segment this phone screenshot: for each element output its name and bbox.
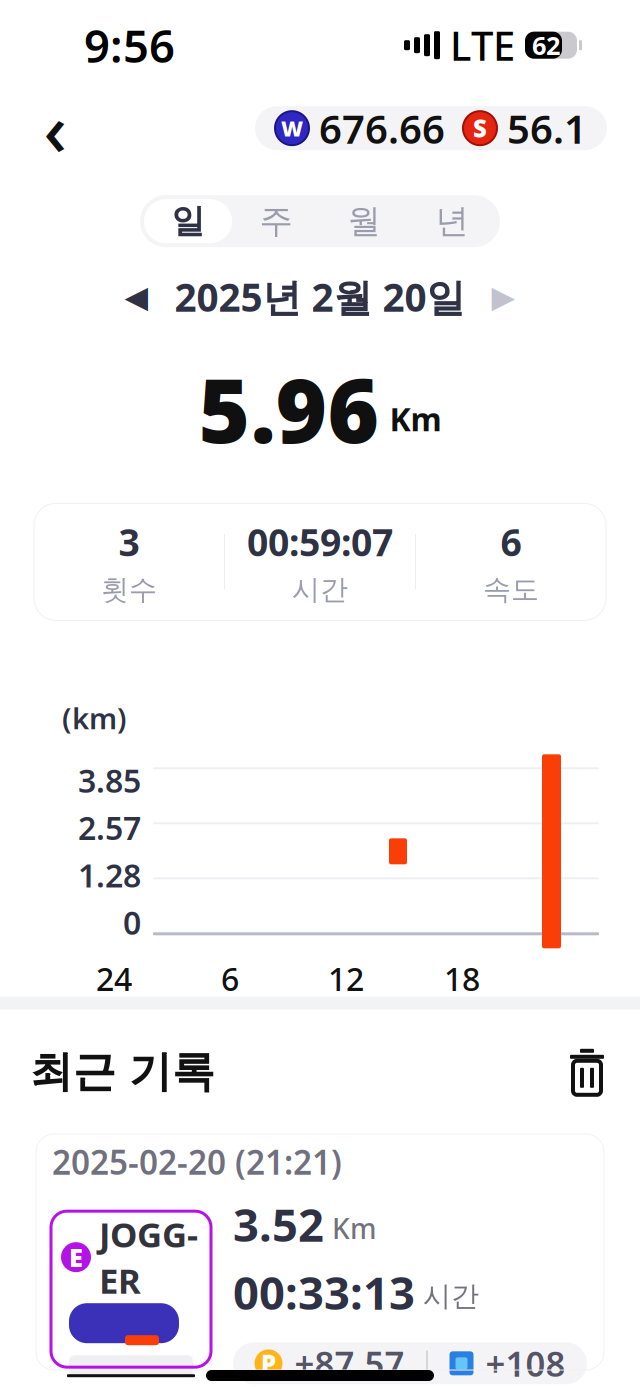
staticText: +108 [485,1340,565,1386]
staticText: 00:59:07 [247,517,393,566]
staticText: 3.52 [233,1194,324,1254]
staticText: 9:56 [84,15,175,75]
staticText: 시간 [423,1279,479,1313]
staticText: 2025-02-20 (21:21) [52,1140,342,1184]
staticText: ▶ [491,279,515,314]
staticText: 월 [347,201,380,242]
staticText: ◀ [124,279,148,314]
staticText: P [261,1347,276,1379]
staticText: 시간 [292,572,348,607]
staticText: 주 [259,201,292,242]
button[interactable]: 일 [144,199,232,243]
staticText: 1.28 [78,854,141,896]
button[interactable]: 2025-02-20 (21:21) [36,1134,604,1370]
staticText: JOGGER [99,1211,198,1303]
button[interactable]: Previous day [114,275,158,319]
staticText: W [281,114,303,142]
button[interactable]: 주 [232,199,320,243]
button[interactable]: W [255,106,607,150]
staticText: 년 [435,201,468,242]
staticText: 속도 [483,572,539,607]
staticText: LTE [450,19,515,72]
staticText: 56.1 [507,102,587,155]
staticText: 2.57 [78,806,141,849]
staticText: 6 [500,517,521,566]
button[interactable]: Back [24,97,86,159]
staticText: E [69,1240,83,1274]
button[interactable]: 월 [320,199,408,243]
staticText: 일 [171,201,204,242]
staticText: 3 [118,517,139,566]
staticText: 18 [444,957,480,1000]
staticText: S [473,112,487,144]
staticText: 24 [96,957,132,1000]
staticText: Km [389,398,441,440]
staticText: +87.57 [294,1340,404,1386]
staticText: 0 [123,901,141,944]
staticText: 2025년 2월 20일 [174,271,465,322]
staticText: 676.66 [319,102,445,155]
staticText: 6 [221,957,239,1000]
staticText: 62 [532,28,560,62]
staticText: Km [332,1209,377,1247]
staticText: 5.96 [198,350,379,467]
button[interactable]: Next day [481,275,525,319]
staticText: ‹ [43,80,66,176]
staticText: 최근 기록 [30,1046,215,1098]
button[interactable]: 년 [408,199,496,243]
staticText: 3.85 [78,759,141,802]
staticText: 횟수 [101,572,157,607]
staticText: 00:33:13 [233,1262,415,1322]
staticText: 12 [328,957,364,1000]
staticText: (km) [62,698,127,737]
button[interactable]: Delete records [562,1047,612,1097]
